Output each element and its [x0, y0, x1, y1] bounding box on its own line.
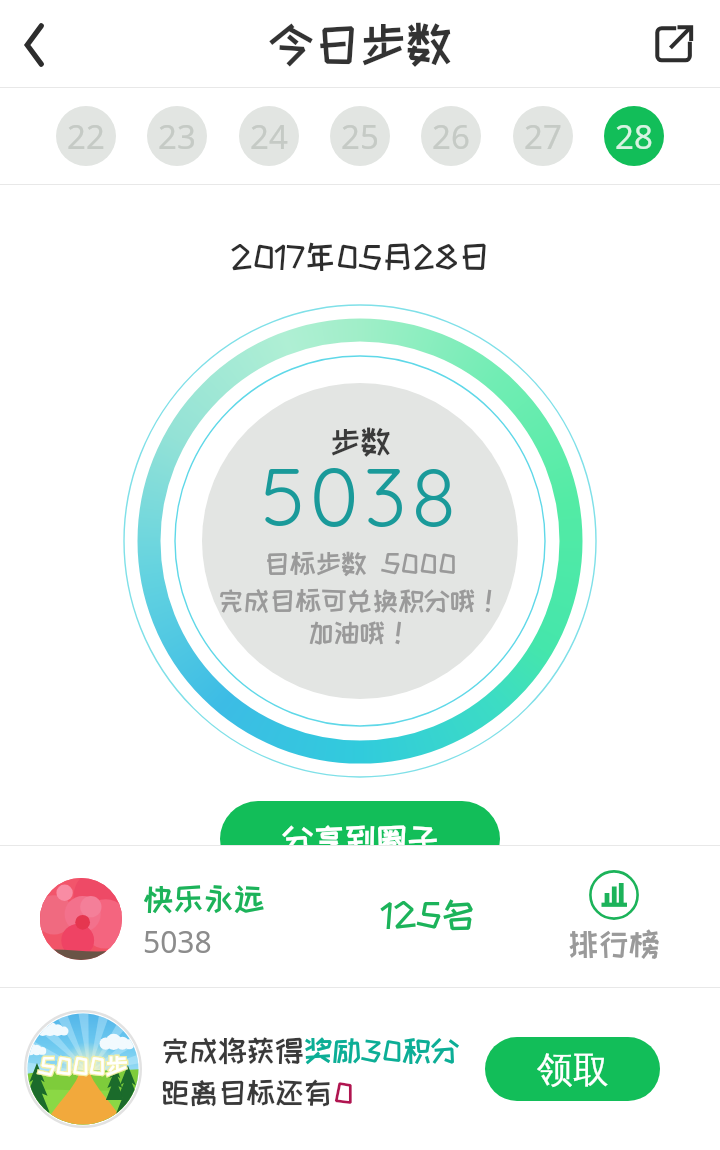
button[interactable]: 27 [513, 106, 573, 166]
staticText: 2017年05月28日 [231, 239, 490, 273]
button[interactable]: Back [0, 9, 71, 80]
staticText: 26 [432, 114, 470, 159]
staticText: 目标步数 5000 [264, 549, 457, 577]
staticText: 25 [341, 114, 379, 159]
staticText: 22 [67, 114, 105, 159]
button[interactable]: 22 [56, 106, 116, 166]
staticText: 领取 [537, 1047, 609, 1092]
button[interactable]: 23 [147, 106, 207, 166]
staticText: 125名 [381, 896, 475, 932]
button[interactable]: 快乐永远 [0, 846, 720, 987]
staticText: 23 [158, 114, 196, 159]
staticText: 5000步 [38, 1053, 129, 1078]
staticText: 0 [333, 1077, 354, 1108]
staticText: 27 [524, 114, 562, 159]
staticText: 奖励30积分 [304, 1035, 460, 1066]
button[interactable]: 领取 [485, 1037, 660, 1101]
button[interactable]: 26 [421, 106, 481, 166]
staticText: 排行榜 [568, 927, 660, 960]
staticText: 完成目标可兑换积分哦！ [218, 586, 502, 614]
staticText: 5038 [260, 444, 461, 547]
button[interactable]: 分享到圈子 [220, 801, 500, 877]
button[interactable]: 25 [330, 106, 390, 166]
staticText: 5000步 [38, 1053, 129, 1078]
staticText: 加油哦！ [308, 618, 412, 646]
button[interactable]: 24 [239, 106, 299, 166]
button[interactable]: Share [642, 12, 706, 76]
button[interactable]: 排行榜 [568, 870, 660, 960]
staticText: 28 [615, 114, 653, 159]
staticText: 5038 [143, 921, 212, 962]
staticText: 步数 [330, 425, 391, 458]
staticText: 距离目标还有 [161, 1077, 333, 1108]
staticText: 24 [250, 114, 288, 159]
staticText: 今日步数 [268, 19, 452, 69]
staticText: 快乐永远 [143, 882, 265, 915]
staticText: 完成将获得 [161, 1035, 304, 1066]
button[interactable]: 28 [604, 106, 664, 166]
staticText: 分享到圈子 [282, 822, 439, 856]
